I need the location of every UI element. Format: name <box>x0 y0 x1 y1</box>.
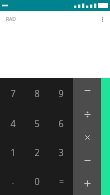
button[interactable]: 4 <box>0 108 25 137</box>
button[interactable]: 9 <box>49 78 73 108</box>
button[interactable]: 1 <box>0 137 25 166</box>
button[interactable]: 3 <box>49 137 73 166</box>
staticText: = <box>59 175 64 186</box>
staticText: RAD <box>6 16 16 23</box>
staticText: 9 <box>58 87 64 99</box>
staticText: 2 <box>34 146 40 158</box>
staticText: 4 <box>10 117 16 129</box>
staticText: 8 <box>34 87 40 99</box>
staticText: 3 <box>58 146 64 158</box>
button[interactable]: Plus <box>73 172 101 195</box>
button[interactable]: Divide <box>73 102 101 126</box>
staticText: 0 <box>34 175 40 187</box>
button[interactable]: Minus <box>73 149 101 172</box>
button[interactable]: 2 <box>25 137 49 166</box>
button[interactable]: 0 <box>25 166 49 195</box>
button[interactable]: 6 <box>49 108 73 137</box>
staticText: 1 <box>10 146 16 158</box>
button[interactable]: 7 <box>0 78 25 108</box>
button[interactable]: RAD <box>4 14 18 25</box>
button[interactable]: 8 <box>25 78 49 108</box>
button[interactable]: Backspace <box>73 78 101 102</box>
staticText: 6 <box>58 117 64 129</box>
button[interactable]: = <box>49 166 73 195</box>
staticText: 7 <box>10 87 16 99</box>
staticText: . <box>12 175 14 186</box>
staticText: 5 <box>34 117 40 129</box>
button[interactable]: Multiply <box>73 126 101 149</box>
button[interactable]: More options <box>96 13 108 25</box>
button[interactable]: 5 <box>25 108 49 137</box>
